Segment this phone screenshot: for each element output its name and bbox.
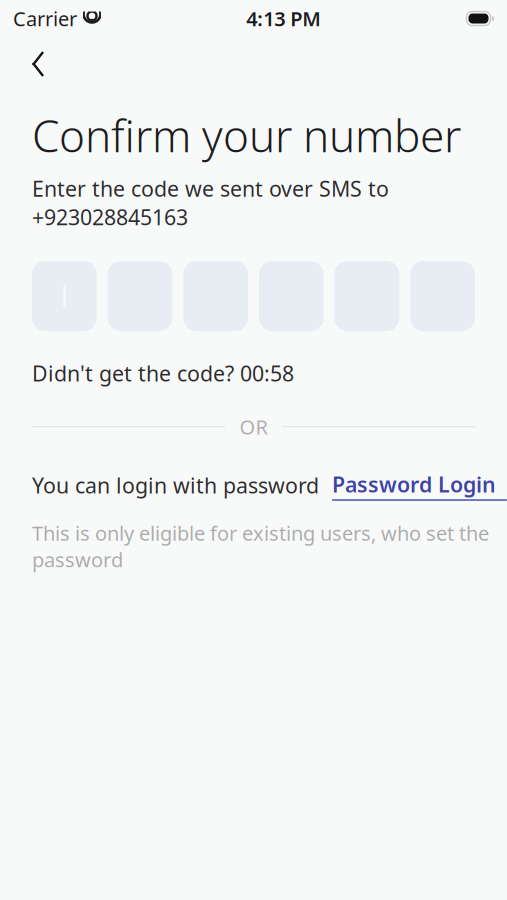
staticText: Password Login	[332, 470, 496, 498]
button[interactable]: Didn't get the code? 00:58	[0, 359, 294, 387]
staticText: 4:13 PM	[246, 5, 321, 32]
staticText: This is only eligible for existing users…	[32, 520, 489, 573]
staticText: You can login with password	[32, 471, 319, 499]
staticText: OR	[239, 413, 267, 440]
button[interactable]: Back	[18, 44, 58, 84]
button[interactable]: Password Login	[332, 470, 507, 501]
staticText: Didn't get the code? 00:58	[32, 359, 294, 387]
staticText: Enter the code we sent over SMS to +9230…	[32, 174, 389, 231]
staticText: Confirm your number	[32, 106, 461, 164]
button[interactable]: Code digit	[32, 261, 97, 331]
staticText: Carrier	[13, 5, 77, 32]
